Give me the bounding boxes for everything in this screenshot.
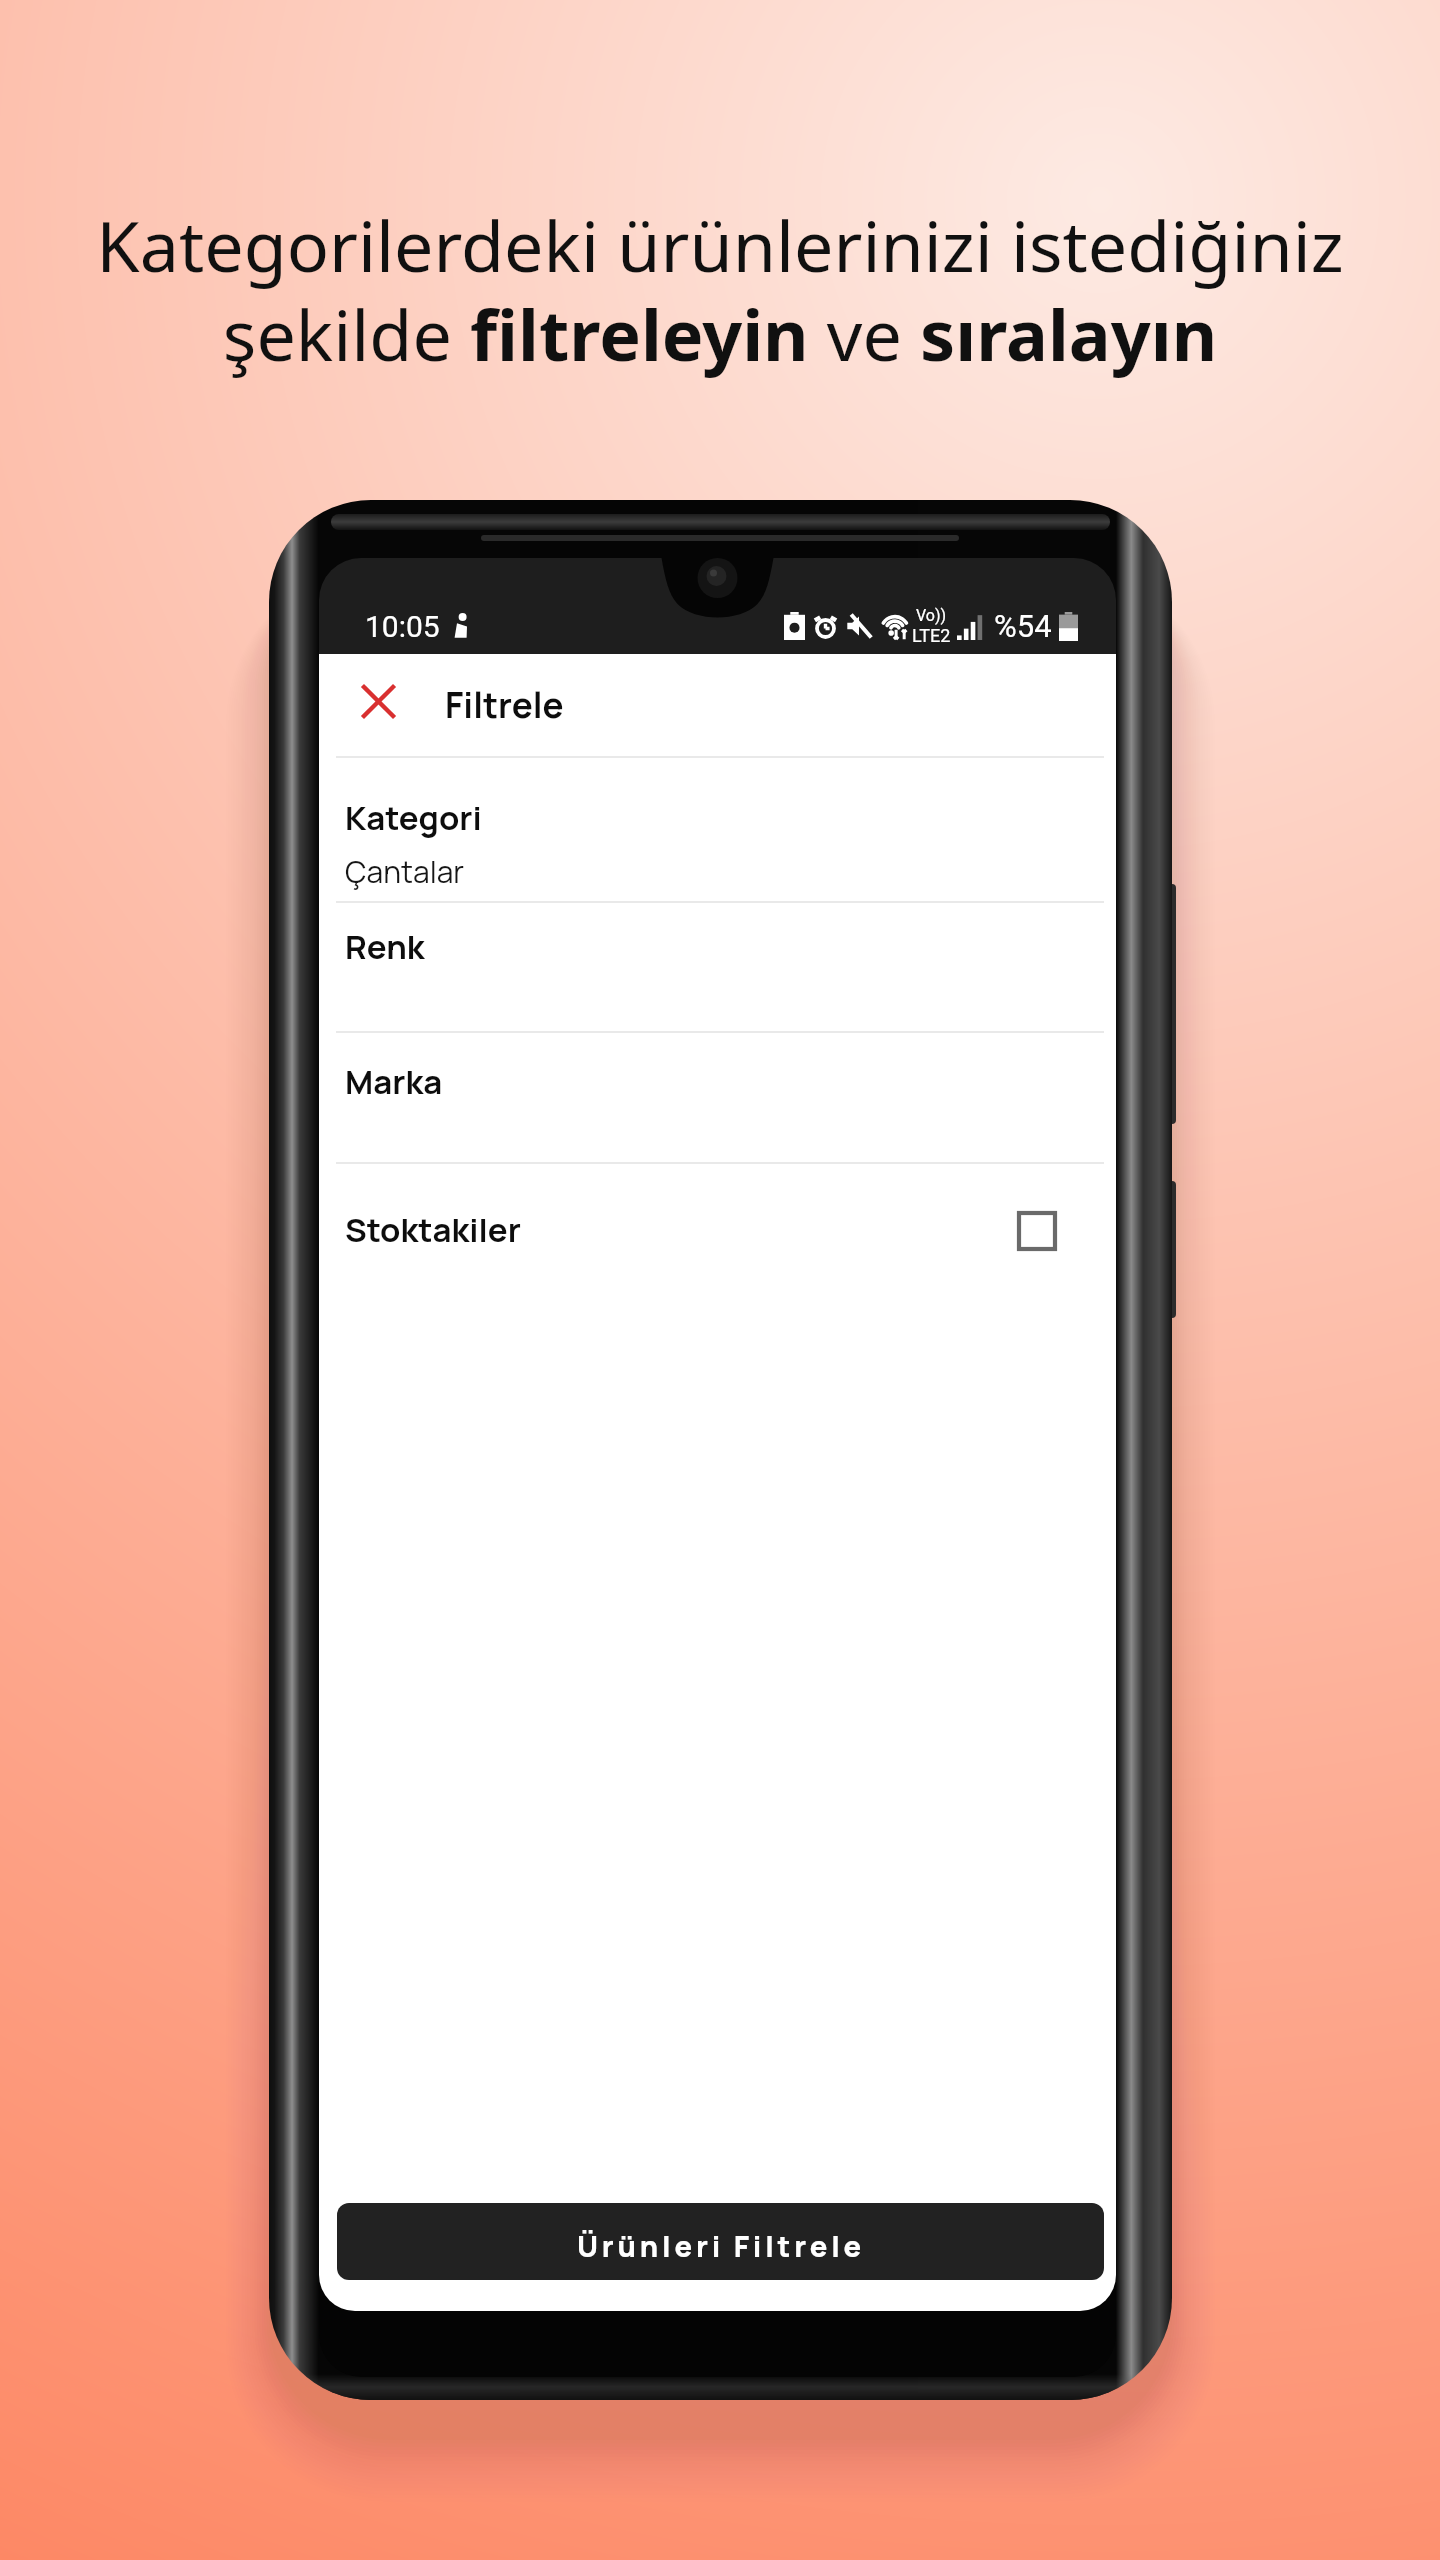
button[interactable]: Marka — [319, 1033, 1116, 1162]
staticText: Stoktakiler — [345, 1207, 521, 1252]
staticText: Vo)) — [916, 606, 947, 625]
button[interactable]: Kapat — [319, 654, 421, 756]
staticText: Çantalar — [345, 851, 465, 892]
button[interactable]: Stoktakiler onay kutusu — [1017, 1211, 1057, 1251]
staticText: Kategorilerdeki ürünlerinizi istediğiniz… — [0, 197, 1440, 381]
staticText: Kategori — [345, 795, 482, 840]
button[interactable]: Kategori — [319, 758, 1116, 901]
button[interactable]: Stoktakiler — [319, 1164, 1116, 1299]
button[interactable]: Ürünleri Filtrele — [337, 2203, 1104, 2280]
staticText: Ürünleri Filtrele — [577, 2226, 865, 2266]
staticText: 10:05 — [365, 609, 440, 644]
staticText: %54 — [994, 608, 1052, 644]
staticText: Filtrele — [445, 681, 564, 729]
staticText: LTE2 — [912, 625, 951, 646]
staticText: Renk — [345, 924, 425, 969]
staticText: Marka — [345, 1059, 443, 1104]
button[interactable]: Renk — [319, 903, 1116, 1031]
